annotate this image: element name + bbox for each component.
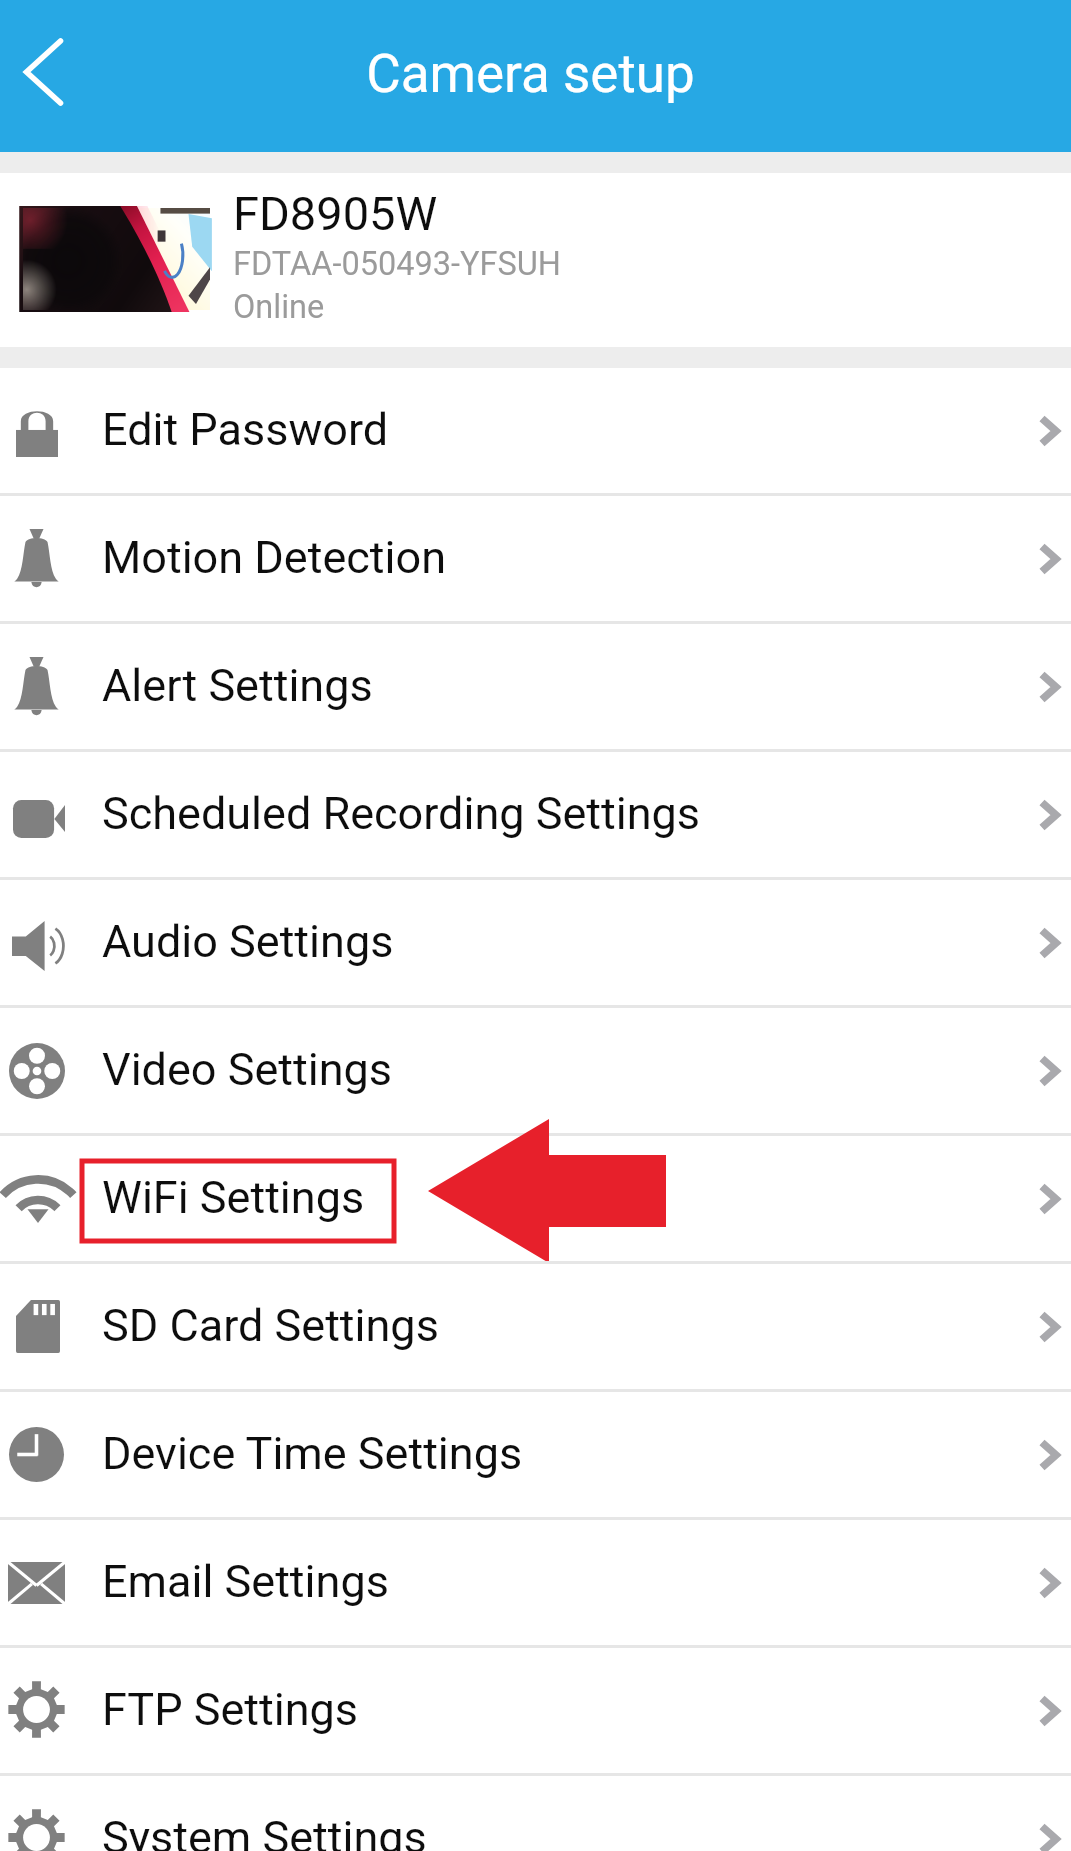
- staticText: Audio Settings: [102, 915, 394, 968]
- staticText: Edit Password: [102, 403, 389, 456]
- button[interactable]: System Settings: [0, 1776, 1071, 1851]
- button[interactable]: Video Settings: [0, 1008, 1071, 1133]
- button[interactable]: SD Card Settings: [0, 1264, 1071, 1389]
- staticText: Online: [233, 288, 325, 326]
- button[interactable]: FD8905W: [0, 173, 1071, 347]
- staticText: Motion Detection: [102, 531, 447, 584]
- button[interactable]: Back: [0, 0, 130, 152]
- button[interactable]: Email Settings: [0, 1520, 1071, 1645]
- button[interactable]: FTP Settings: [0, 1648, 1071, 1773]
- button[interactable]: WiFi Settings: [0, 1136, 1071, 1261]
- button[interactable]: Edit Password: [0, 368, 1071, 493]
- staticText: FTP Settings: [102, 1683, 359, 1736]
- button[interactable]: Motion Detection: [0, 496, 1071, 621]
- staticText: WiFi Settings: [102, 1171, 365, 1224]
- staticText: Device Time Settings: [102, 1427, 523, 1480]
- button[interactable]: Audio Settings: [0, 880, 1071, 1005]
- button[interactable]: Alert Settings: [0, 624, 1071, 749]
- staticText: Video Settings: [102, 1043, 392, 1096]
- staticText: SD Card Settings: [102, 1299, 439, 1352]
- staticText: Alert Settings: [102, 659, 373, 712]
- staticText: Email Settings: [102, 1555, 389, 1608]
- staticText: Camera setup: [366, 43, 695, 105]
- staticText: Scheduled Recording Settings: [102, 787, 701, 840]
- button[interactable]: Device Time Settings: [0, 1392, 1071, 1517]
- button[interactable]: Scheduled Recording Settings: [0, 752, 1071, 877]
- staticText: FD8905W: [233, 186, 438, 241]
- staticText: FDTAA-050493-YFSUH: [233, 245, 561, 283]
- staticText: System Settings: [102, 1811, 427, 1851]
